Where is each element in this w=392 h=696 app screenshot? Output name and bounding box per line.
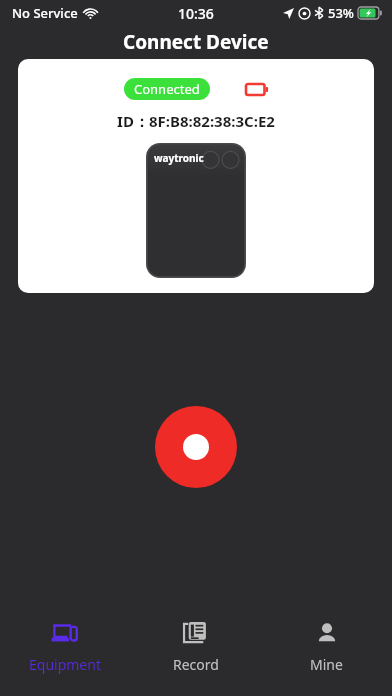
- other: Battery low: [246, 84, 268, 95]
- button[interactable]: Record: [130, 600, 261, 696]
- staticText: 53%: [328, 4, 354, 22]
- staticText: ID：8F:B8:82:38:3C:E2: [117, 111, 275, 131]
- button[interactable]: Connected: [124, 78, 210, 100]
- staticText: Record: [173, 655, 219, 674]
- staticText: Mine: [310, 655, 343, 674]
- staticText: 10:36: [178, 4, 214, 23]
- staticText: No Service: [12, 4, 78, 22]
- staticText: Connect Device: [123, 29, 269, 55]
- button[interactable]: Record: [155, 406, 237, 488]
- staticText: Equipment: [29, 655, 101, 674]
- staticText: waytronic: [154, 151, 204, 165]
- button[interactable]: Equipment: [0, 600, 130, 696]
- button[interactable]: Mine: [261, 600, 392, 696]
- staticText: Connected: [134, 80, 200, 98]
